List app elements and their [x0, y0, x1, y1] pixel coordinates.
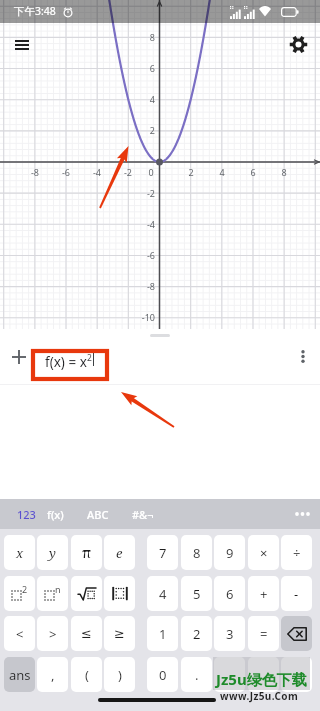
button[interactable]: + [248, 576, 279, 611]
button[interactable]: 2 [181, 616, 212, 651]
staticText: -2 [116, 166, 140, 178]
button[interactable]: Settings [279, 25, 317, 63]
button[interactable]: More options [288, 329, 318, 384]
staticText: , [51, 666, 55, 684]
staticText: ABC [87, 507, 109, 522]
staticText: f(x) = x [45, 353, 87, 371]
button[interactable]: . [181, 657, 212, 692]
staticText: 2 [87, 352, 92, 364]
staticText: 下午3:48 [14, 4, 56, 18]
staticText: . [195, 666, 199, 684]
button[interactable]: 0 [147, 657, 178, 692]
staticText: 2 [133, 124, 155, 136]
button[interactable]: ABC [77, 499, 119, 529]
button[interactable]: > [37, 616, 68, 651]
button[interactable]: y [37, 535, 68, 570]
staticText: f(x) [47, 507, 64, 522]
button[interactable]: ) [104, 657, 135, 692]
button[interactable]: ans [4, 657, 35, 692]
button[interactable]: × [248, 535, 279, 570]
button[interactable]: Delete [281, 616, 312, 651]
staticText: x [16, 544, 24, 562]
staticText: Jz5u绿色下载 [216, 669, 307, 689]
button[interactable]: 9 [214, 535, 245, 570]
button[interactable]: 1 [147, 616, 178, 651]
button[interactable]: Add expression [4, 329, 34, 384]
button[interactable]: ≥ [104, 616, 135, 651]
staticText: 6 [241, 166, 265, 178]
staticText: -4 [133, 218, 155, 230]
button[interactable]: 2 [4, 576, 35, 611]
staticText: -8 [133, 280, 155, 292]
staticText: ans [9, 666, 31, 684]
staticText: ≥ [114, 626, 125, 641]
staticText: 7 [159, 544, 167, 562]
button[interactable]: #&¬ [123, 499, 163, 529]
button[interactable]: ≤ [71, 616, 102, 651]
staticText: 5 [193, 585, 201, 603]
staticText: y [49, 544, 56, 562]
button[interactable] [281, 657, 312, 692]
staticText: - [294, 585, 299, 603]
staticText: 2 [22, 583, 28, 595]
staticText: ≤ [81, 626, 92, 641]
staticText: n [55, 583, 61, 595]
button[interactable]: Menu [2, 25, 42, 65]
button[interactable]: f(x) [38, 499, 73, 529]
button[interactable]: , [37, 657, 68, 692]
staticText: 6 [226, 585, 234, 603]
staticText: -6 [133, 249, 155, 261]
button[interactable]: ( [71, 657, 102, 692]
button[interactable]: 6 [214, 576, 245, 611]
button[interactable] [104, 576, 135, 611]
staticText: ) [118, 666, 122, 684]
staticText: -6 [54, 166, 78, 178]
button[interactable] [248, 657, 279, 692]
staticText: 1 [159, 625, 167, 643]
staticText: 8 [193, 544, 201, 562]
staticText: 0 [159, 666, 167, 684]
button[interactable]: More keyboard options [286, 499, 318, 529]
staticText: × [260, 544, 268, 562]
staticText: 4 [133, 93, 155, 105]
staticText: 2 [179, 166, 203, 178]
staticText: 4 [159, 585, 167, 603]
button[interactable]: - [281, 576, 312, 611]
button[interactable]: π [71, 535, 102, 570]
staticText: 123 [17, 507, 36, 522]
staticText: = [260, 625, 268, 643]
button[interactable]: n [37, 576, 68, 611]
button[interactable] [71, 576, 102, 611]
staticText: e [116, 544, 123, 562]
button[interactable]: 4 [147, 576, 178, 611]
button[interactable]: 3 [214, 616, 245, 651]
button[interactable]: e [104, 535, 135, 570]
button[interactable]: 123 [7, 499, 45, 529]
staticText: 9 [226, 544, 234, 562]
button[interactable]: = [248, 616, 279, 651]
button[interactable]: 7 [147, 535, 178, 570]
button[interactable] [214, 657, 245, 692]
staticText: 8 [272, 166, 296, 178]
button[interactable]: f(x) = x [38, 329, 288, 384]
button[interactable]: 5 [181, 576, 212, 611]
staticText: + [260, 585, 268, 603]
staticText: -8 [23, 166, 47, 178]
button[interactable]: 8 [181, 535, 212, 570]
button[interactable]: ÷ [281, 535, 312, 570]
staticText: 2 [193, 625, 201, 643]
staticText: 6 [133, 62, 155, 74]
staticText: 3 [226, 625, 234, 643]
staticText: 8 [133, 31, 155, 43]
staticText: 4 [210, 166, 234, 178]
staticText: 0 [143, 166, 159, 178]
staticText: ( [85, 666, 89, 684]
staticText: -10 [133, 311, 155, 323]
staticText: -2 [133, 187, 155, 199]
staticText: #&¬ [132, 507, 154, 522]
button[interactable]: < [4, 616, 35, 651]
staticText: π [82, 543, 92, 562]
staticText: www.Jz5u.Com [220, 689, 299, 703]
button[interactable]: x [4, 535, 35, 570]
staticText: -4 [85, 166, 109, 178]
